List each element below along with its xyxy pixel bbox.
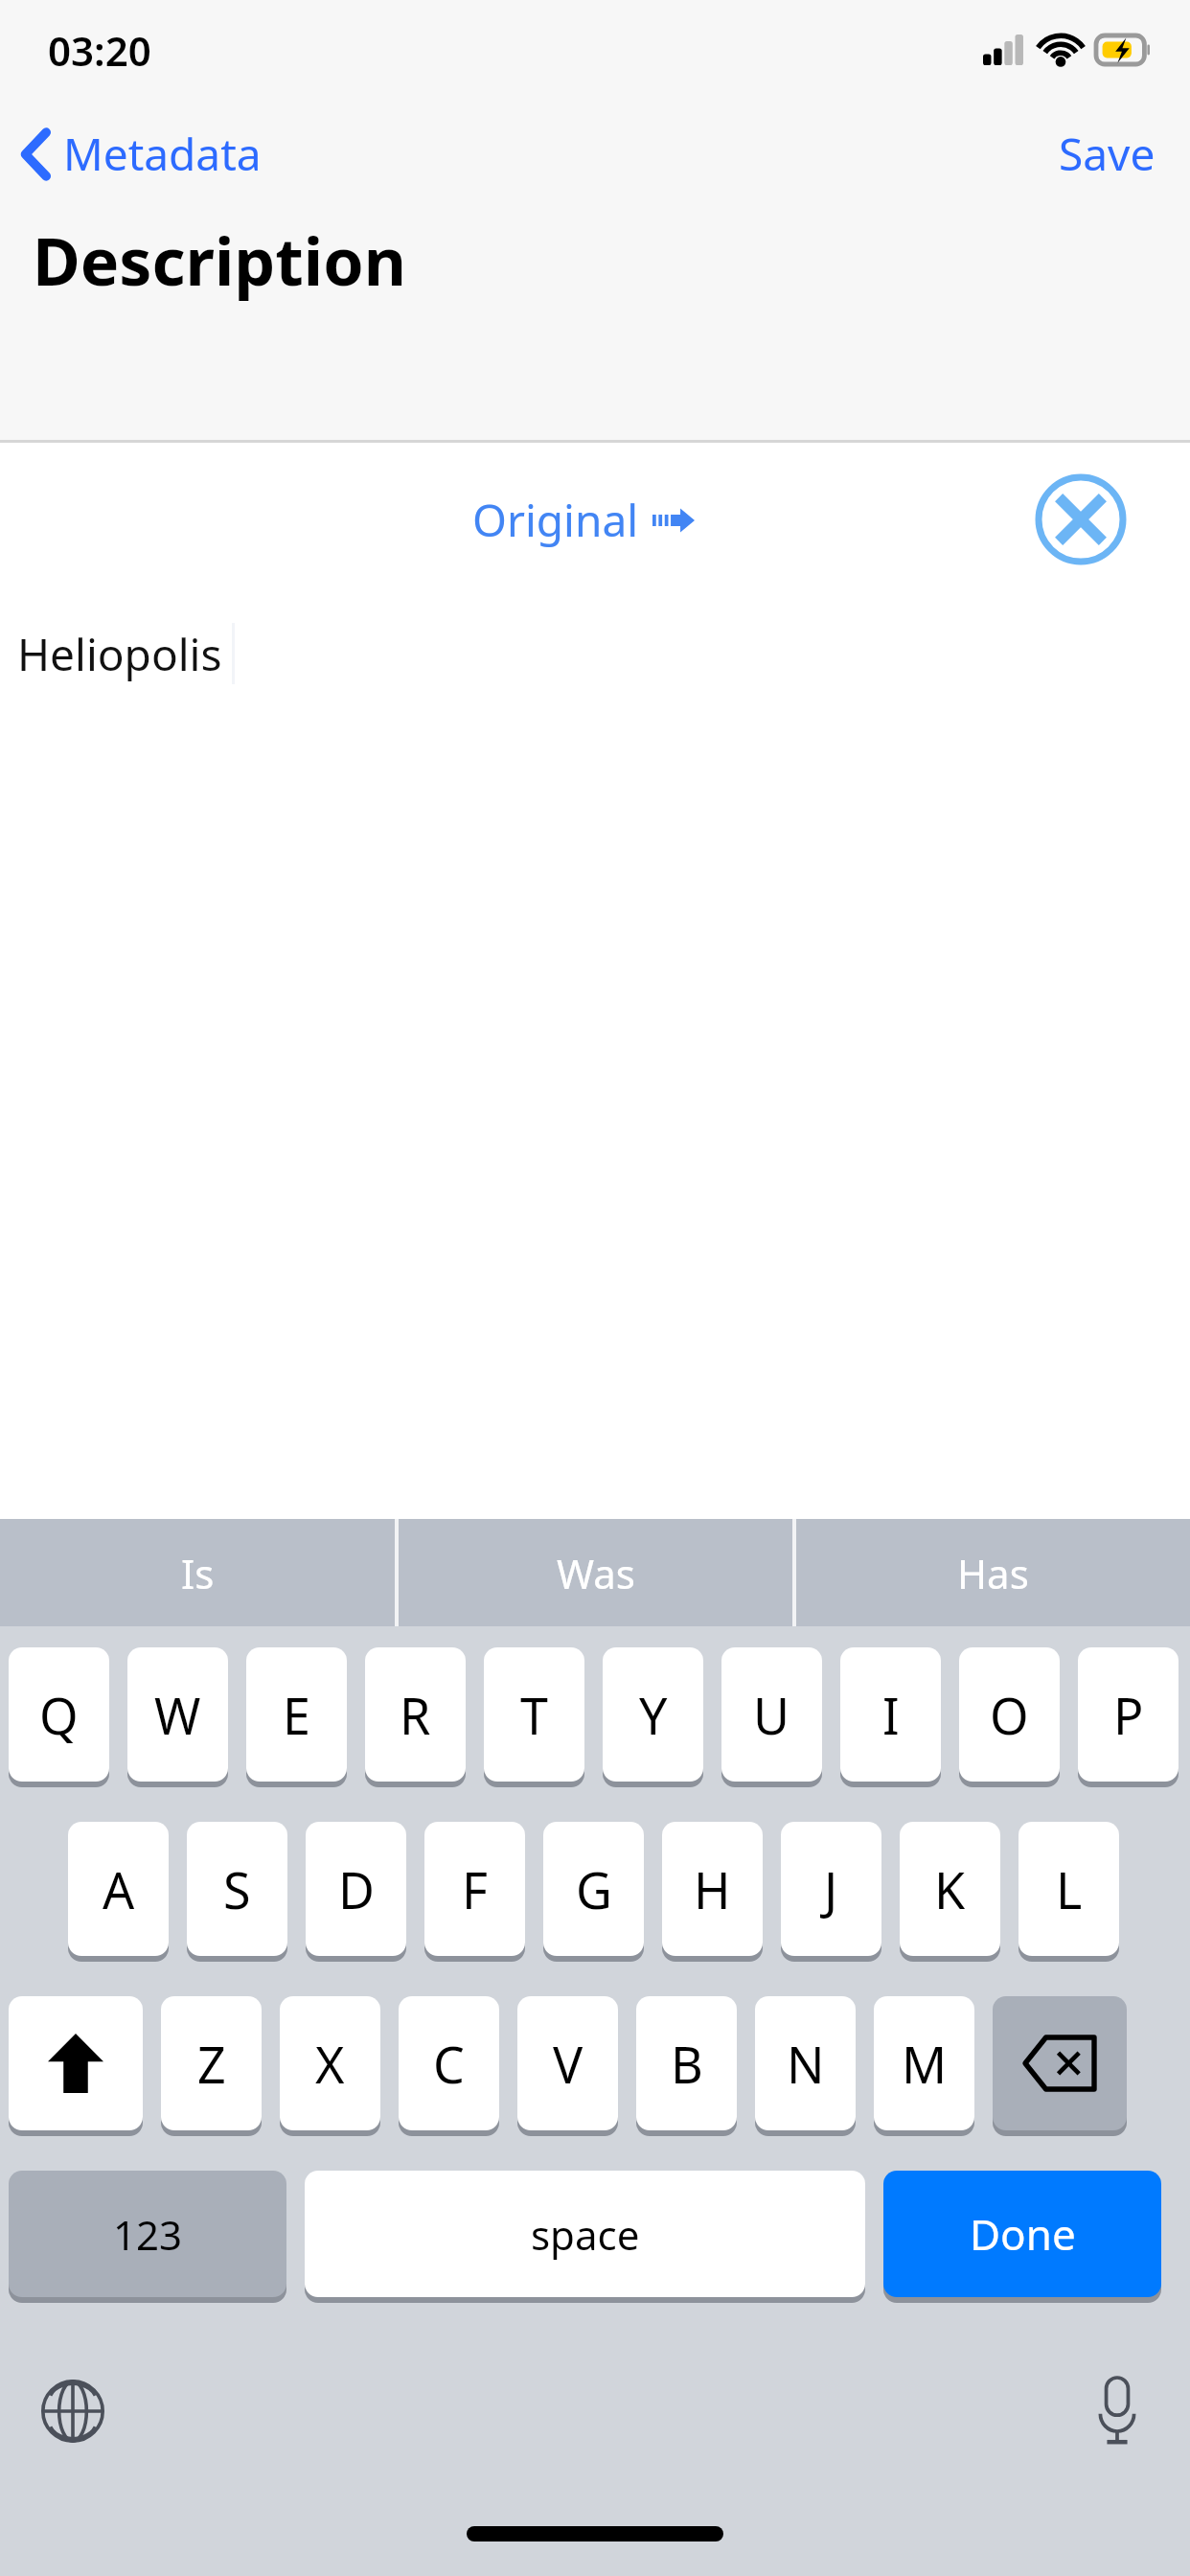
button[interactable]: B <box>636 1996 737 2130</box>
staticText: C <box>433 2030 465 2098</box>
button[interactable]: N <box>755 1996 856 2130</box>
staticText: Q <box>39 1681 79 1749</box>
button[interactable]: Backspace <box>993 1996 1127 2130</box>
staticText: M <box>902 2030 948 2098</box>
button[interactable]: Is <box>0 1519 395 1626</box>
button[interactable]: S <box>187 1822 287 1956</box>
staticText: Y <box>639 1681 668 1749</box>
button[interactable]: C <box>399 1996 499 2130</box>
staticText: I <box>882 1681 900 1749</box>
button[interactable]: K <box>900 1822 1000 1956</box>
staticText: W <box>154 1681 201 1749</box>
button[interactable]: D <box>306 1822 406 1956</box>
staticText: G <box>576 1855 612 1923</box>
staticText: S <box>223 1855 251 1923</box>
button[interactable]: Original <box>459 480 708 560</box>
button[interactable]: R <box>365 1647 466 1782</box>
staticText: O <box>990 1681 1029 1749</box>
button[interactable]: J <box>781 1822 881 1956</box>
button[interactable]: Save <box>1030 114 1190 194</box>
button[interactable]: F <box>424 1822 525 1956</box>
staticText: T <box>520 1681 548 1749</box>
button[interactable]: A <box>68 1822 169 1956</box>
staticText: R <box>400 1681 431 1749</box>
staticText: J <box>824 1855 838 1923</box>
staticText: space <box>531 2207 640 2262</box>
staticText: Original <box>472 490 639 550</box>
button[interactable]: Metadata <box>0 116 279 192</box>
button[interactable]: Shift <box>9 1996 143 2130</box>
button[interactable]: O <box>959 1647 1060 1782</box>
button[interactable]: Dictation <box>1071 2365 1163 2457</box>
button[interactable]: 123 <box>9 2171 286 2297</box>
staticText: F <box>462 1855 488 1923</box>
button[interactable]: Change keyboard <box>27 2365 119 2457</box>
staticText: H <box>694 1855 731 1923</box>
button[interactable]: X <box>280 1996 380 2130</box>
staticText: U <box>753 1681 790 1749</box>
button[interactable]: I <box>840 1647 941 1782</box>
button[interactable]: V <box>517 1996 618 2130</box>
staticText: Save <box>1059 124 1156 184</box>
button[interactable]: E <box>246 1647 347 1782</box>
button[interactable]: Z <box>161 1996 262 2130</box>
button[interactable]: W <box>127 1647 228 1782</box>
button[interactable]: space <box>305 2171 865 2297</box>
staticText: E <box>283 1681 310 1749</box>
staticText: 123 <box>113 2207 183 2262</box>
staticText: Is <box>181 1546 215 1600</box>
staticText: Metadata <box>63 124 262 184</box>
staticText: V <box>553 2030 584 2098</box>
button[interactable]: H <box>662 1822 763 1956</box>
staticText: Z <box>197 2030 226 2098</box>
button[interactable]: Was <box>399 1519 792 1626</box>
button[interactable]: P <box>1078 1647 1179 1782</box>
staticText: B <box>671 2030 703 2098</box>
button[interactable]: Y <box>603 1647 703 1782</box>
staticText: X <box>315 2030 345 2098</box>
staticText: P <box>1113 1681 1144 1749</box>
staticText: D <box>338 1855 375 1923</box>
staticText: N <box>787 2030 825 2098</box>
staticText: Done <box>970 2205 1076 2263</box>
button[interactable]: Close <box>1029 468 1133 571</box>
staticText: L <box>1056 1855 1083 1923</box>
staticText: Has <box>957 1546 1029 1600</box>
staticText: Description <box>33 216 406 305</box>
button[interactable]: Has <box>796 1519 1190 1626</box>
button[interactable]: U <box>721 1647 822 1782</box>
button[interactable]: Heliopolis <box>0 596 1190 711</box>
button[interactable]: L <box>1018 1822 1119 1956</box>
button[interactable]: T <box>484 1647 584 1782</box>
staticText: 03:20 <box>48 23 151 78</box>
button[interactable]: G <box>543 1822 644 1956</box>
button[interactable]: Q <box>9 1647 109 1782</box>
staticText: Heliopolis <box>17 624 222 684</box>
button[interactable]: Done <box>883 2171 1161 2297</box>
staticText: Was <box>557 1546 635 1600</box>
button[interactable]: M <box>874 1996 974 2130</box>
staticText: A <box>103 1855 135 1923</box>
staticText: K <box>934 1855 966 1923</box>
